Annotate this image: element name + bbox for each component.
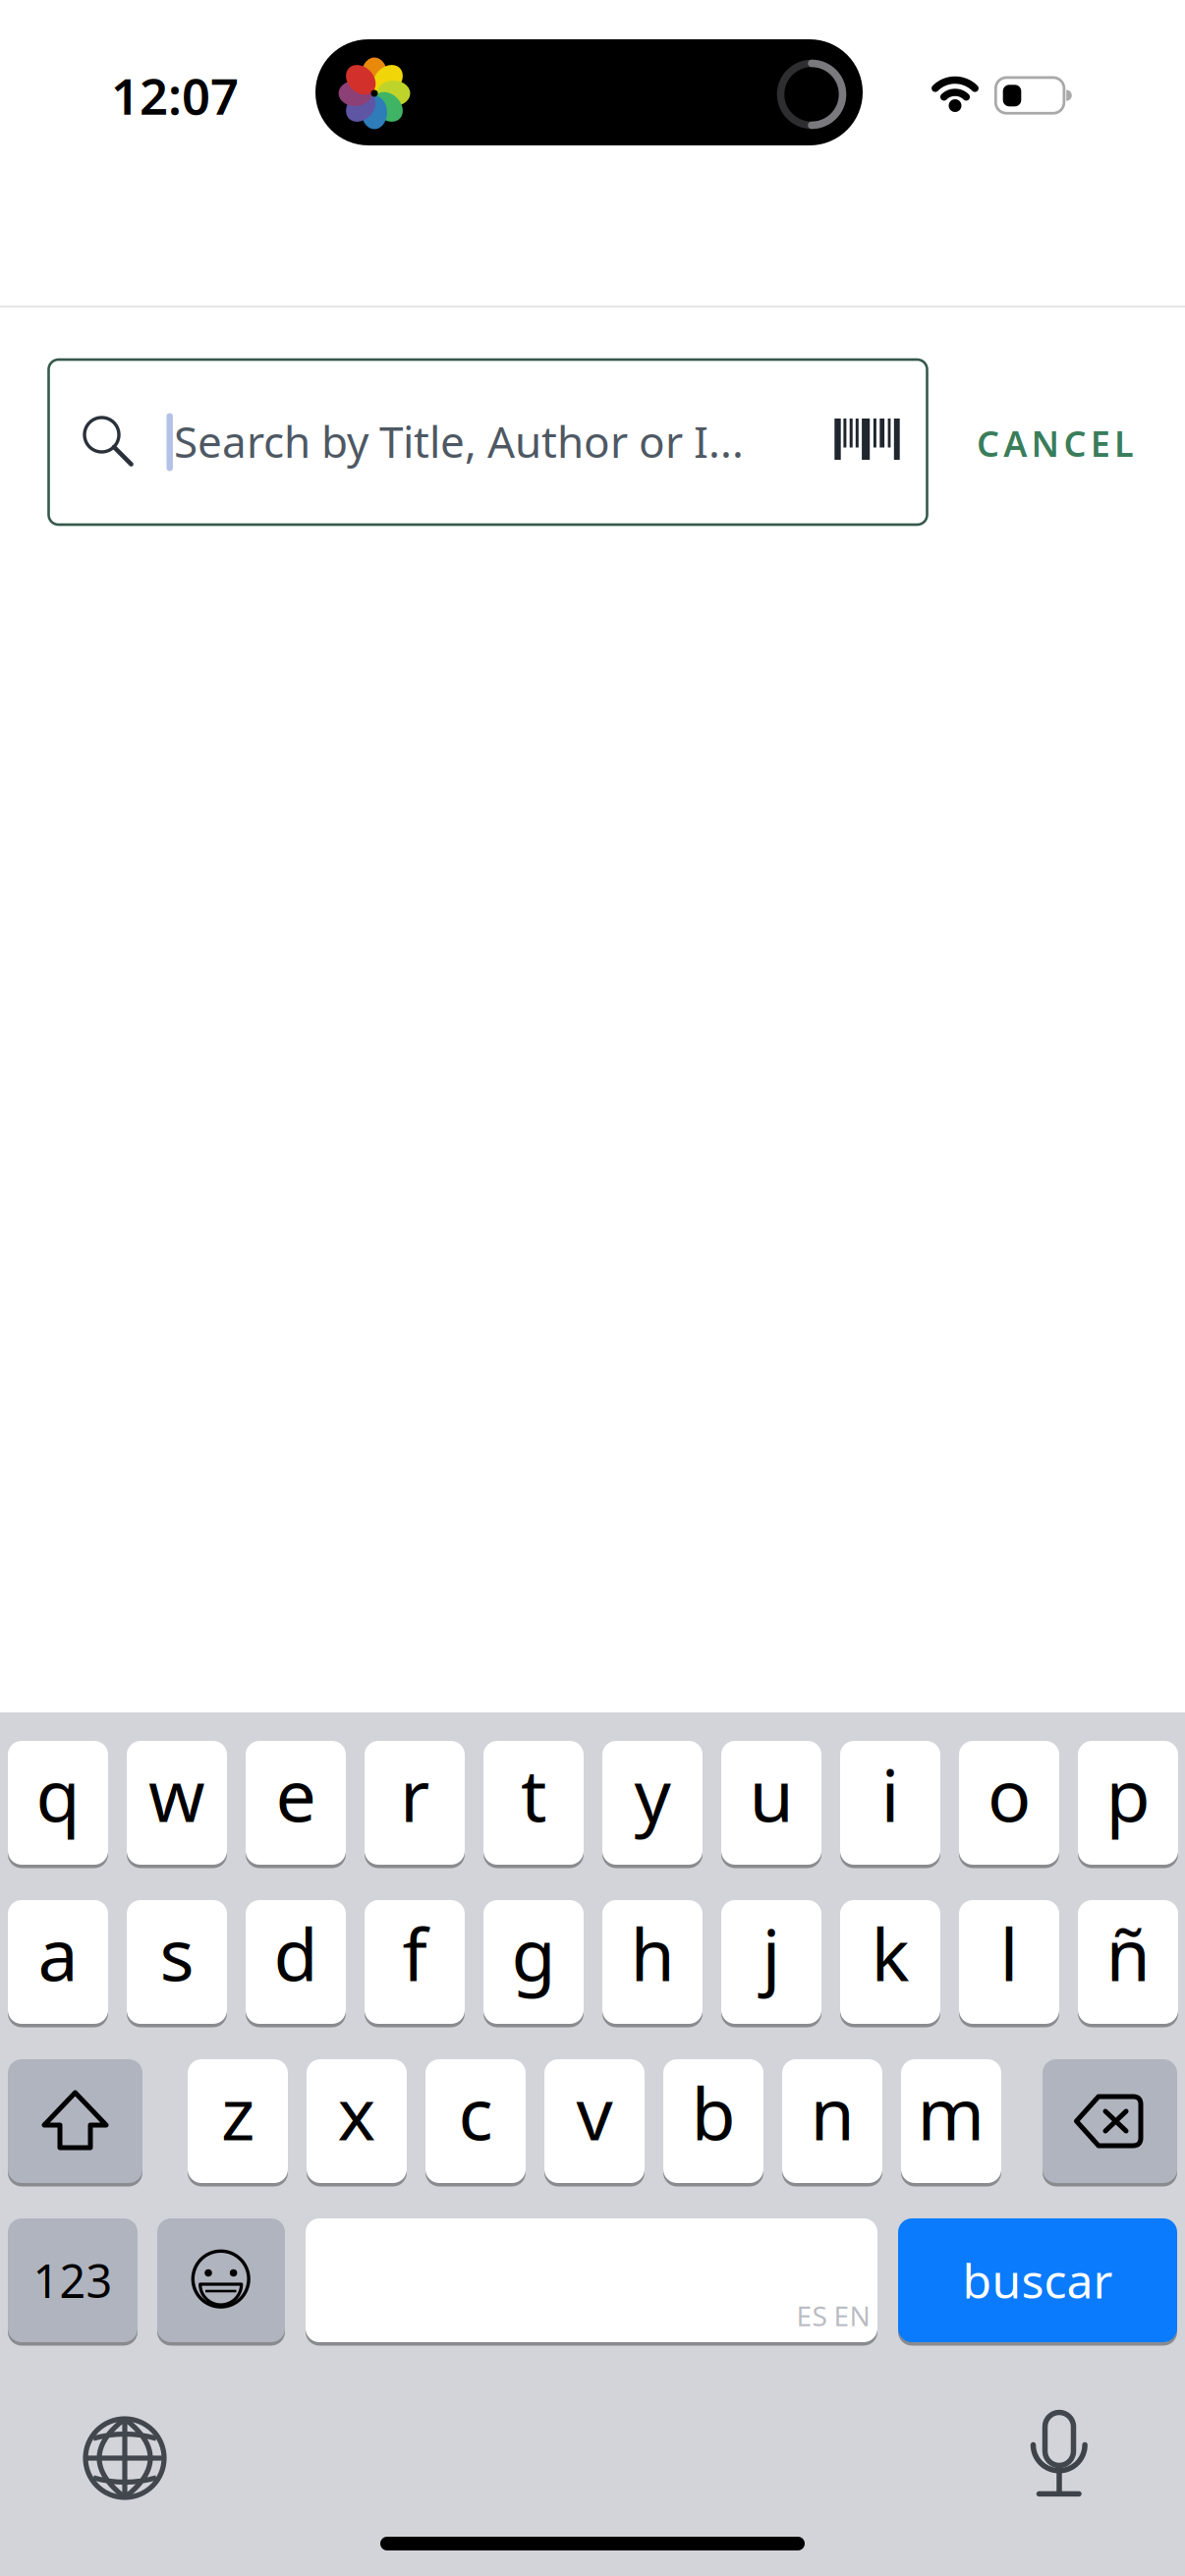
button[interactable]: s [127, 1900, 227, 2024]
staticText: Search by Title, Author or I... [174, 412, 744, 470]
staticText: i [881, 1746, 900, 1842]
button[interactable]: t [483, 1741, 584, 1865]
staticText: buscar [962, 2249, 1113, 2312]
button[interactable]: Shift [8, 2059, 142, 2183]
staticText: f [402, 1905, 427, 2001]
staticText: c [458, 2064, 493, 2160]
button[interactable]: v [544, 2059, 645, 2183]
button[interactable]: ñ [1078, 1900, 1178, 2024]
staticText: l [1000, 1905, 1018, 2001]
button[interactable]: Delete [1043, 2059, 1177, 2183]
button[interactable]: g [483, 1900, 584, 2024]
button[interactable]: 123 [8, 2218, 138, 2342]
staticText: q [36, 1746, 80, 1842]
button[interactable]: o [959, 1741, 1059, 1865]
staticText: u [749, 1746, 793, 1842]
button[interactable]: q [8, 1741, 108, 1865]
staticText: x [338, 2064, 376, 2160]
button[interactable]: Search by Title, Author or I... [49, 360, 927, 525]
staticText: m [917, 2064, 985, 2160]
button[interactable]: e [246, 1741, 346, 1865]
staticText: r [400, 1746, 429, 1842]
staticText: p [1106, 1746, 1150, 1842]
button[interactable]: Scan barcode [823, 407, 910, 472]
staticText: C [977, 420, 999, 467]
button[interactable]: c [425, 2059, 526, 2183]
button[interactable]: Space [306, 2218, 877, 2342]
button[interactable]: u [721, 1741, 821, 1865]
button[interactable]: r [365, 1741, 465, 1865]
button[interactable]: a [8, 1900, 108, 2024]
staticText: o [987, 1746, 1031, 1842]
button[interactable]: x [307, 2059, 407, 2183]
staticText: 123 [33, 2250, 113, 2311]
staticText: 12:07 [111, 62, 239, 128]
staticText: E [1090, 420, 1110, 467]
button[interactable]: y [602, 1741, 703, 1865]
button[interactable]: f [365, 1900, 465, 2024]
button[interactable]: l [959, 1900, 1059, 2024]
staticText: ES EN [796, 2297, 870, 2334]
staticText: e [276, 1746, 316, 1842]
staticText: t [521, 1746, 546, 1842]
staticText: g [511, 1905, 556, 2001]
staticText: ñ [1106, 1905, 1150, 2001]
staticText: h [630, 1905, 675, 2001]
staticText: N [1031, 420, 1060, 467]
button[interactable]: h [602, 1900, 703, 2024]
staticText: y [634, 1746, 671, 1842]
staticText: C [1064, 420, 1086, 467]
button[interactable]: p [1078, 1741, 1178, 1865]
button[interactable]: Emoji [157, 2218, 285, 2342]
button[interactable]: w [127, 1741, 227, 1865]
staticText: L [1114, 420, 1134, 467]
button[interactable]: Dictate [1005, 2400, 1113, 2508]
button[interactable]: i [840, 1741, 940, 1865]
staticText: b [691, 2064, 735, 2160]
button[interactable]: j [721, 1900, 821, 2024]
staticText: n [810, 2064, 854, 2160]
button[interactable]: b [663, 2059, 763, 2183]
staticText: w [148, 1746, 205, 1842]
button[interactable]: z [188, 2059, 288, 2183]
staticText: z [221, 2064, 254, 2160]
button[interactable]: Next keyboard [71, 2404, 179, 2512]
button[interactable]: m [901, 2059, 1001, 2183]
staticText: v [576, 2064, 613, 2160]
staticText: d [274, 1905, 318, 2001]
staticText: a [38, 1905, 78, 2001]
button[interactable]: k [840, 1900, 940, 2024]
button[interactable]: buscar [898, 2218, 1177, 2342]
staticText: A [1003, 420, 1027, 467]
button[interactable]: n [782, 2059, 882, 2183]
staticText: k [871, 1905, 909, 2001]
button[interactable]: C [937, 404, 1173, 482]
staticText: s [160, 1905, 194, 2001]
button[interactable]: d [246, 1900, 346, 2024]
staticText: j [762, 1905, 781, 2001]
